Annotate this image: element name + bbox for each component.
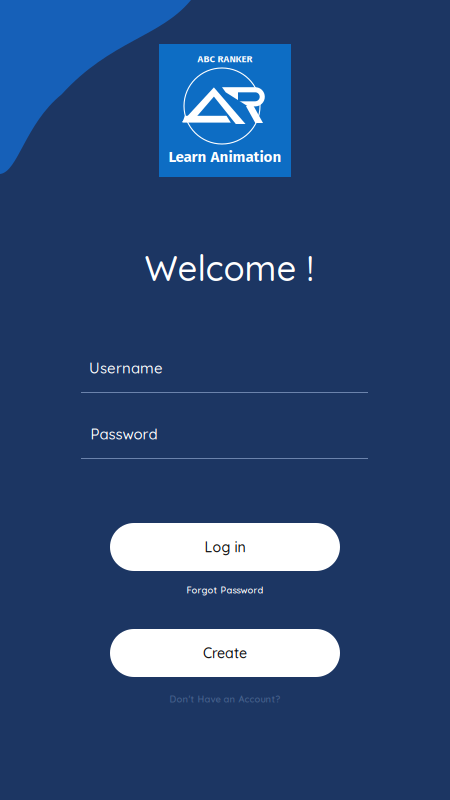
- staticText: Create: [203, 644, 247, 662]
- staticText: Welcome !: [144, 246, 313, 290]
- staticText: Username: [89, 359, 163, 377]
- button[interactable]: Don't Have an Account?: [169, 693, 280, 705]
- staticText: ABC RANKER: [197, 53, 252, 65]
- staticText: Log in: [204, 538, 245, 556]
- staticText: Don't Have an Account?: [169, 693, 280, 705]
- button[interactable]: Forgot Password: [186, 584, 263, 596]
- button[interactable]: Log in: [110, 523, 340, 571]
- staticText: Forgot Password: [186, 584, 263, 596]
- staticText: Learn Animation: [168, 148, 281, 166]
- button[interactable]: Create: [110, 629, 340, 677]
- staticText: Password: [90, 425, 157, 443]
